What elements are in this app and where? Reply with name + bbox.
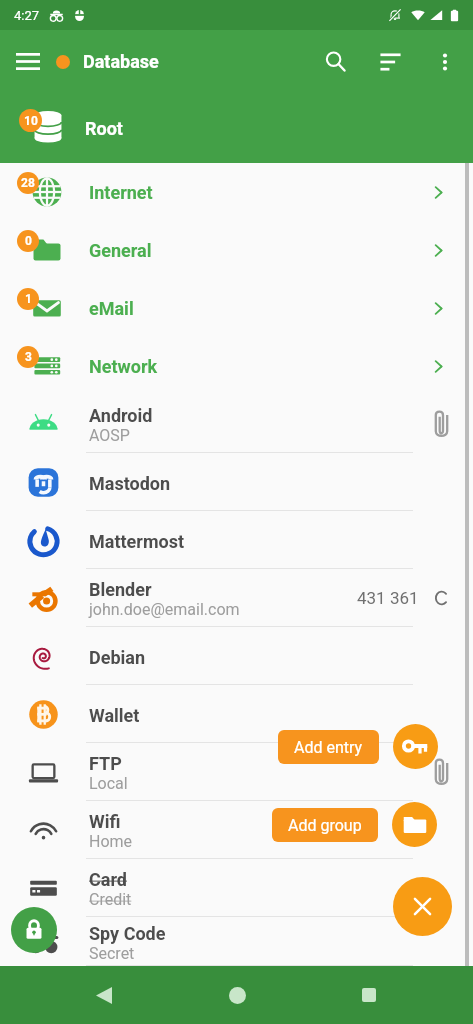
staticText: Wallet [89, 705, 140, 726]
button[interactable]: Mattermost [0, 511, 473, 569]
button[interactable]: Search [307, 30, 363, 93]
staticText: eMail [89, 298, 134, 319]
staticText: Internet [89, 182, 153, 203]
button[interactable]: Close menu [393, 877, 452, 936]
staticText: Mastodon [89, 473, 171, 494]
staticText: Home [89, 832, 133, 851]
staticText: Blender [89, 579, 152, 600]
staticText: Database [83, 51, 159, 72]
staticText: Network [89, 356, 158, 377]
button[interactable]: 10 [0, 93, 473, 163]
button[interactable]: Back [75, 966, 133, 1024]
button[interactable]: Add group [272, 808, 378, 842]
button[interactable]: Card [0, 859, 473, 917]
button[interactable]: Blender [0, 569, 473, 627]
staticText: 4:27 [14, 8, 40, 23]
staticText: Wifi [89, 811, 121, 832]
button[interactable]: FTP [0, 743, 473, 801]
button[interactable]: Wifi [0, 801, 473, 859]
staticText: Root [85, 118, 123, 139]
button[interactable]: Wallet [0, 685, 473, 743]
staticText: 1 [25, 292, 32, 306]
staticText: john.doe@email.com [89, 600, 240, 619]
button[interactable]: 3 [0, 337, 473, 395]
staticText: Mattermost [89, 531, 184, 552]
staticText: Card [89, 869, 127, 890]
button[interactable]: Spy Code [0, 917, 473, 966]
button[interactable]: More options [417, 30, 473, 93]
staticText: 431 361 [357, 588, 419, 608]
button[interactable]: Debian [0, 627, 473, 685]
staticText: Add entry [294, 738, 363, 757]
button[interactable]: Recents [340, 966, 398, 1024]
button[interactable]: Sort [363, 30, 417, 93]
button[interactable]: 28 [0, 163, 473, 221]
staticText: 28 [21, 176, 35, 190]
button[interactable]: Add group [392, 802, 437, 847]
button[interactable]: 1 [0, 279, 473, 337]
button[interactable]: Mastodon [0, 453, 473, 511]
staticText: Credit [89, 890, 132, 909]
button[interactable]: Lock database [11, 907, 57, 953]
button[interactable]: Add entry [393, 724, 438, 769]
button[interactable]: 0 [0, 221, 473, 279]
button[interactable]: Menu [0, 30, 56, 93]
staticText: Add group [288, 816, 362, 835]
staticText: AOSP [89, 426, 130, 445]
staticText: 10 [24, 114, 38, 128]
button[interactable]: Add entry [278, 730, 379, 764]
staticText: General [89, 240, 152, 261]
staticText: Secret [89, 944, 135, 963]
staticText: Local [89, 774, 128, 793]
button[interactable]: Home [208, 966, 266, 1024]
staticText: 3 [25, 350, 32, 364]
staticText: Debian [89, 647, 146, 668]
button[interactable]: Android [0, 395, 473, 453]
staticText: FTP [89, 753, 122, 774]
staticText: Android [89, 405, 153, 426]
staticText: Spy Code [89, 923, 166, 944]
staticText: 0 [25, 234, 32, 248]
